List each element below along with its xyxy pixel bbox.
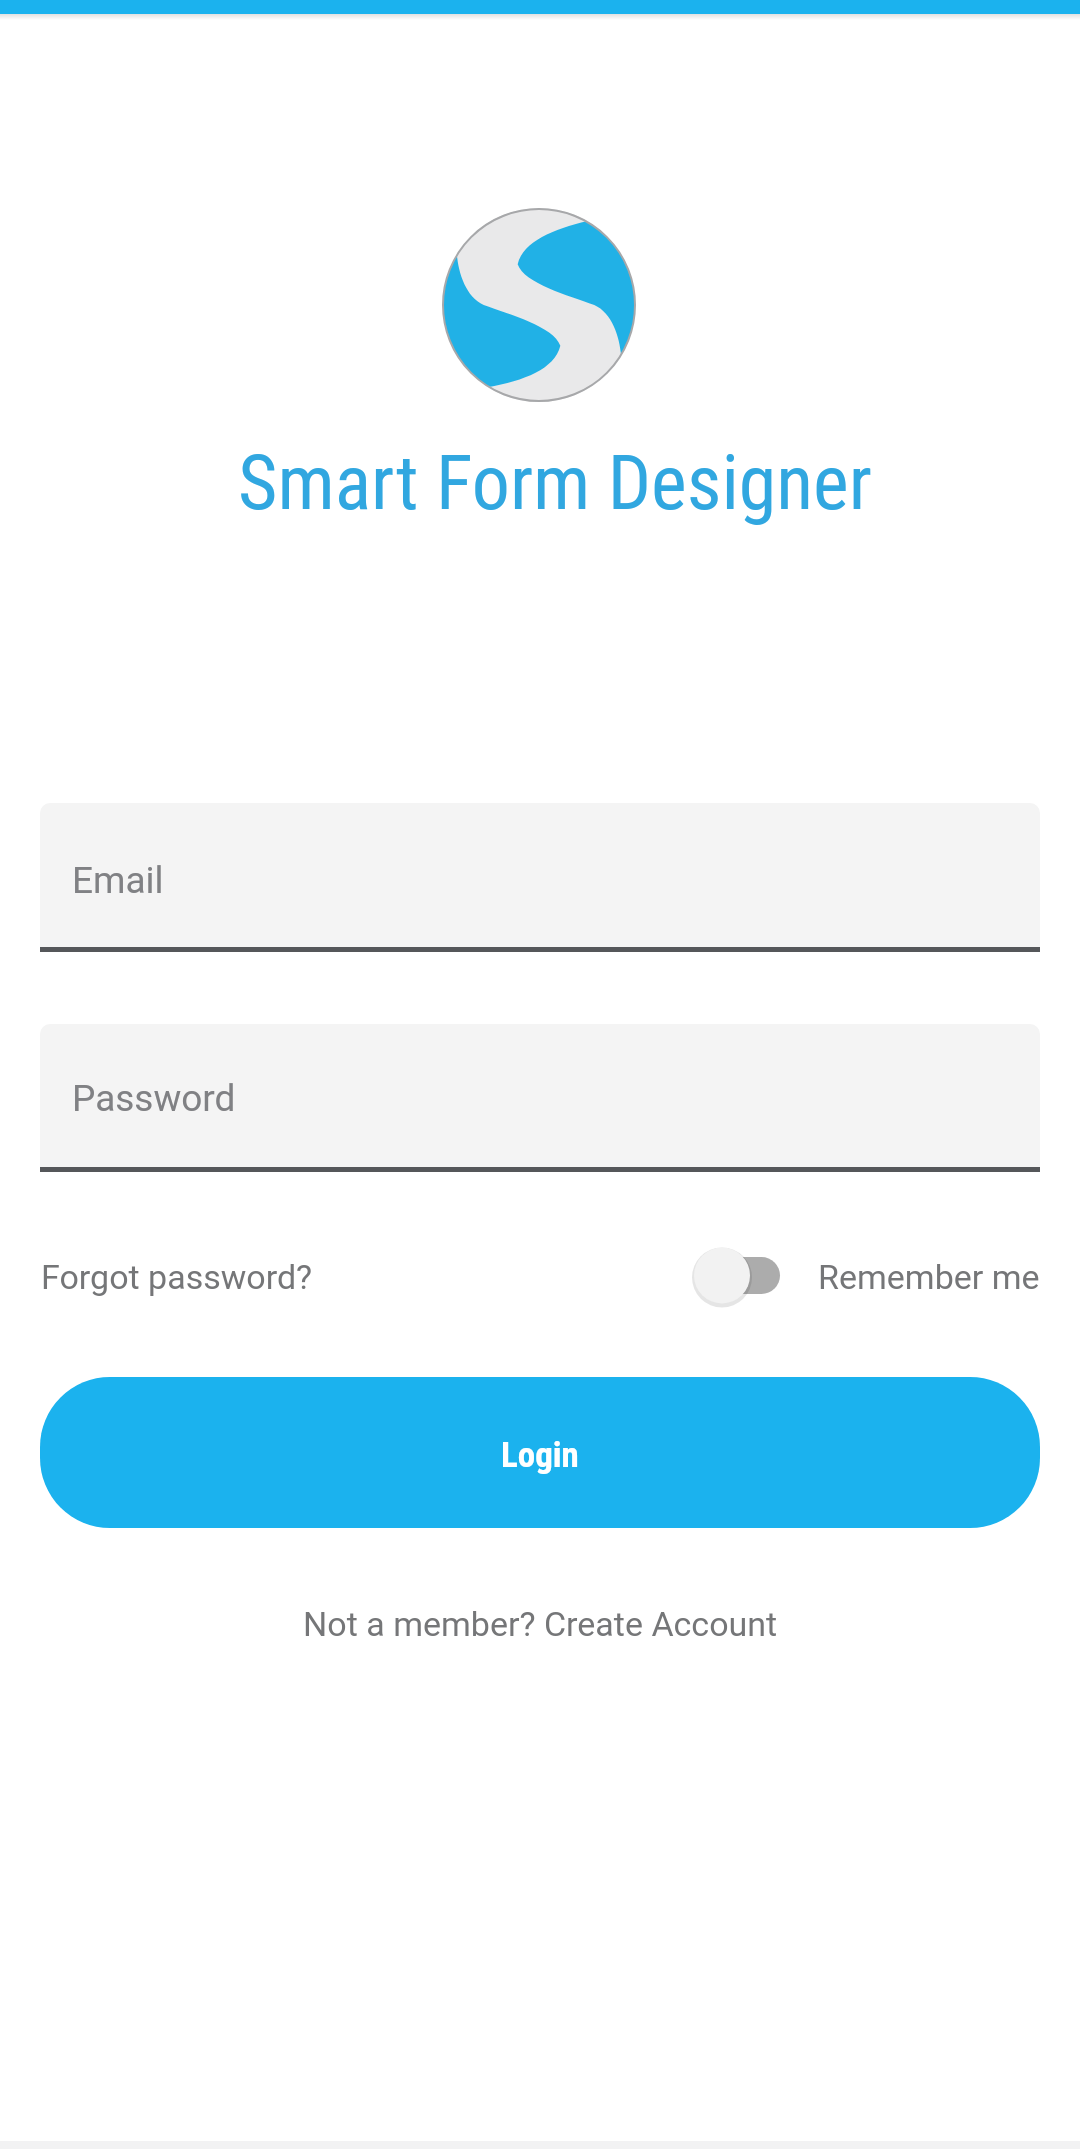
button[interactable]: Email [40, 803, 1040, 952]
button[interactable] [688, 1241, 788, 1311]
staticText: Forgot password? [41, 1257, 313, 1297]
staticText: Password [72, 1077, 236, 1120]
staticText: Login [501, 1435, 579, 1476]
staticText: Email [72, 859, 164, 902]
button[interactable]: Forgot password? [41, 1257, 313, 1297]
staticText: Not a member? Create Account [303, 1604, 778, 1644]
staticText: Smart Form Designer [238, 438, 872, 527]
button[interactable]: Password [40, 1024, 1040, 1172]
button[interactable]: Not a member? Create Account [303, 1604, 778, 1644]
button[interactable]: Remember me [818, 1257, 1040, 1297]
button[interactable]: Login [40, 1377, 1040, 1528]
staticText: Remember me [818, 1257, 1040, 1297]
